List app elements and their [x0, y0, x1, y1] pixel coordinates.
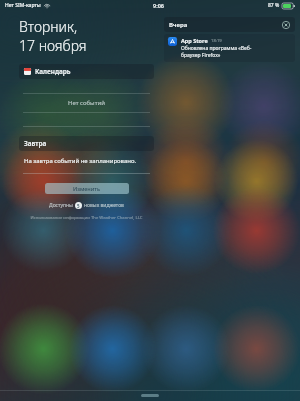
button[interactable]: Вчера — [164, 17, 295, 32]
button[interactable]: Завтра — [19, 136, 154, 151]
staticText: Использование информации The Weather Cha… — [19, 215, 154, 221]
staticText: 17 ноября — [19, 36, 87, 55]
button[interactable]: Очистить уведомления — [281, 20, 290, 29]
staticText: браузер Firefox» — [181, 52, 221, 59]
staticText: Вчера — [169, 21, 188, 29]
staticText: 87 % — [268, 2, 280, 9]
staticText: Изменить — [73, 185, 101, 192]
staticText: Завтра — [24, 139, 47, 148]
button[interactable]: Календарь — [19, 64, 154, 79]
button[interactable]: App Store — [164, 34, 295, 62]
button[interactable]: Изменить — [45, 183, 129, 194]
staticText: Нет SIM-карты — [5, 2, 41, 9]
staticText: 9:06 — [153, 2, 164, 9]
staticText: Календарь — [35, 67, 71, 76]
button[interactable]: Доступны — [19, 202, 154, 209]
staticText: новых виджетов — [84, 202, 124, 209]
staticText: App Store — [181, 37, 208, 44]
other: Очистить уведомления — [282, 21, 290, 29]
staticText: 5 — [77, 203, 80, 209]
staticText: Обновлена программа «Веб- — [181, 45, 252, 52]
staticText: Нет событий — [68, 99, 105, 107]
staticText: На завтра событий не запланировано. — [24, 157, 137, 165]
staticText: Доступны — [49, 202, 73, 209]
staticText: 18:19 — [211, 38, 222, 44]
staticText: Вторник, — [19, 17, 78, 36]
